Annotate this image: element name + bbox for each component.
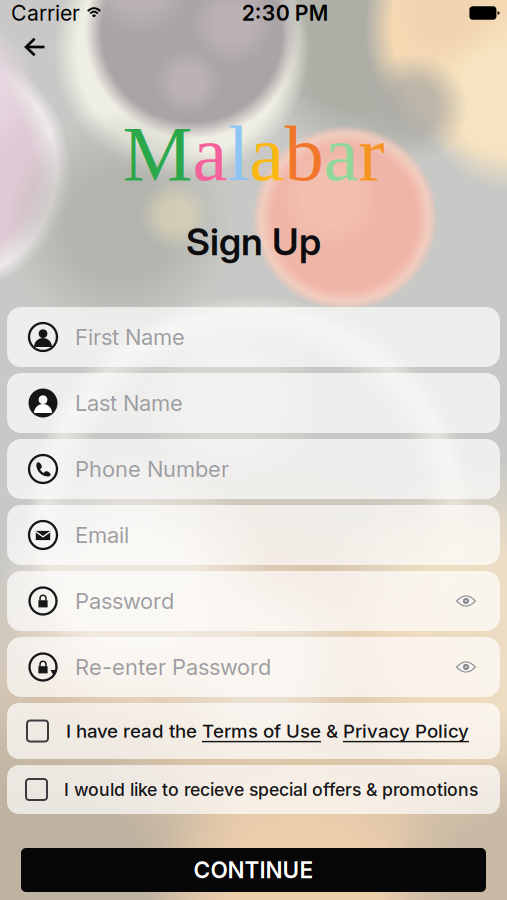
staticText: Phone Number xyxy=(75,456,229,482)
button[interactable]: Back xyxy=(0,26,63,68)
button[interactable]: Re-enter Password xyxy=(7,637,500,697)
staticText: I have read the xyxy=(66,720,202,742)
button[interactable]: Email xyxy=(7,505,500,565)
staticText: Privacy Policy xyxy=(343,720,469,742)
staticText: Email xyxy=(75,522,129,548)
staticText: a xyxy=(249,110,284,197)
staticText: Re-enter Password xyxy=(75,654,271,680)
staticText: a xyxy=(192,110,227,197)
staticText: b xyxy=(284,110,323,197)
staticText: a xyxy=(323,110,358,197)
staticText: CONTINUE xyxy=(193,856,313,884)
staticText: Password xyxy=(75,588,174,614)
button[interactable]: First Name xyxy=(7,307,500,367)
staticText: First Name xyxy=(75,324,185,350)
button[interactable]: Password xyxy=(7,571,500,631)
staticText: M xyxy=(122,110,192,197)
staticText: & xyxy=(321,720,343,742)
button[interactable]: I would like to recieve special offers &… xyxy=(7,765,500,814)
staticText: Carrier xyxy=(11,0,80,26)
button[interactable]: Last Name xyxy=(7,373,500,433)
staticText: Last Name xyxy=(75,390,183,416)
button[interactable]: Phone Number xyxy=(7,439,500,499)
button[interactable]: I have read the xyxy=(7,703,500,759)
staticText: I would like to recieve special offers &… xyxy=(64,779,478,800)
staticText: Sign Up xyxy=(186,219,321,264)
staticText: 2:30 PM xyxy=(242,0,329,26)
staticText: l xyxy=(227,110,249,197)
staticText: r xyxy=(358,110,384,197)
button[interactable]: CONTINUE xyxy=(21,848,486,892)
staticText: Terms of Use xyxy=(202,720,321,742)
